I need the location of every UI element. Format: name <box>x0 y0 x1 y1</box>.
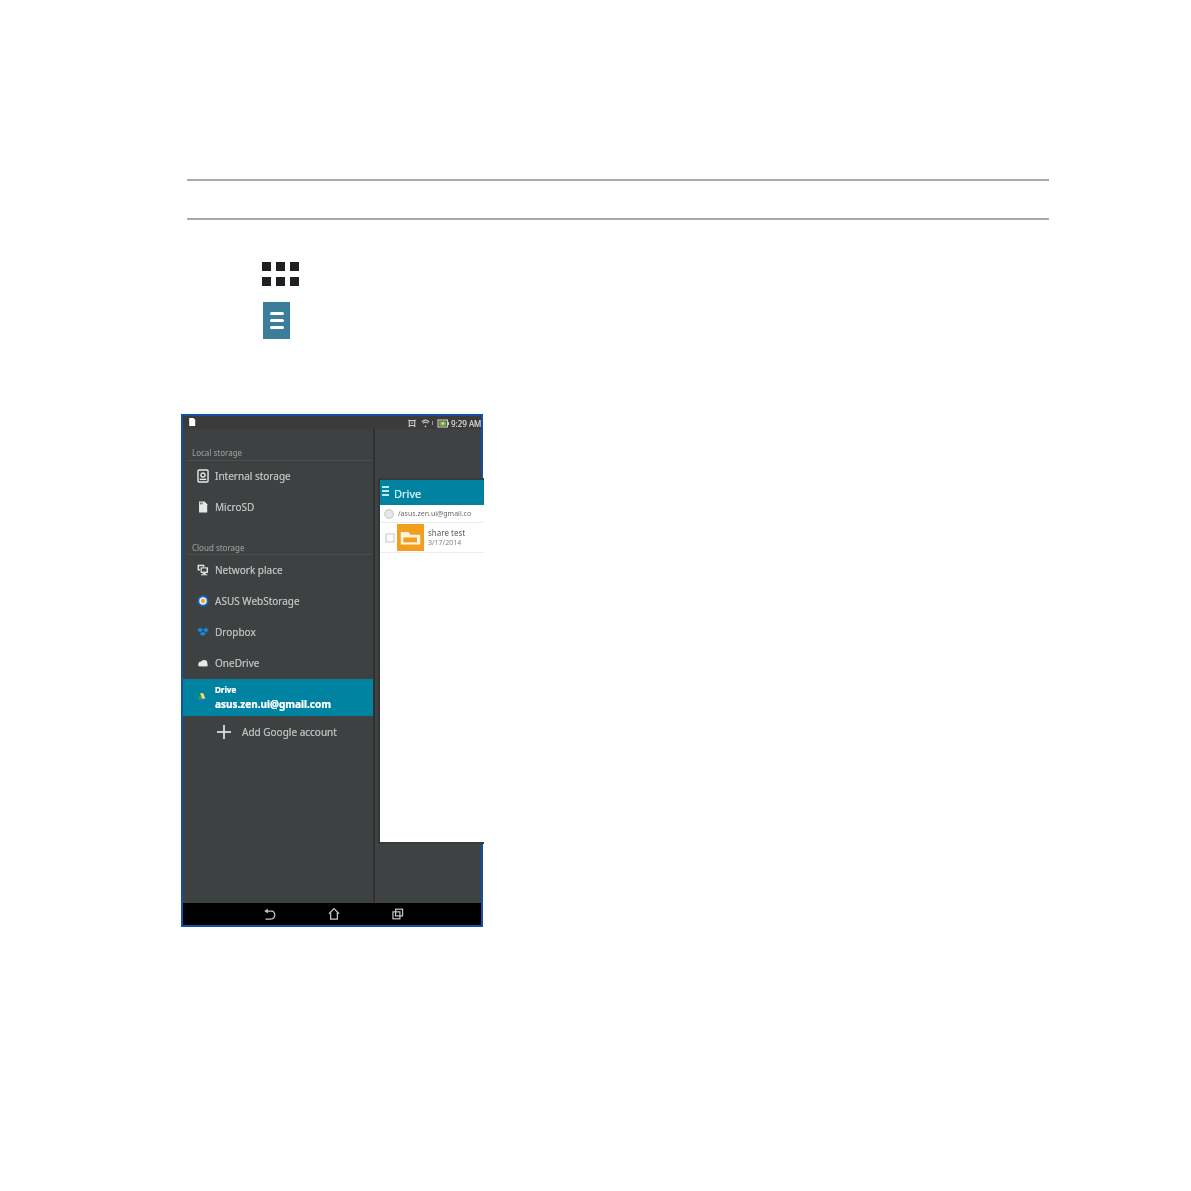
button[interactable]: Drive <box>183 679 374 716</box>
staticText: Network place <box>215 563 283 577</box>
staticText: Cloud storage <box>192 542 245 553</box>
button[interactable]: /asus.zen.ui@gmail.co <box>380 505 484 522</box>
staticText: 3/17/2014 <box>428 538 462 548</box>
button[interactable]: Open navigation drawer <box>382 486 389 496</box>
staticText: MicroSD <box>215 500 255 514</box>
button[interactable]: Menu <box>263 302 290 339</box>
staticText: Internal storage <box>215 469 291 483</box>
staticText: OneDrive <box>215 656 260 670</box>
button[interactable]: ASUS WebStorage <box>183 588 374 614</box>
button[interactable]: share test <box>380 523 484 552</box>
staticText: asus.zen.ui@gmail.com <box>215 697 332 711</box>
staticText: /asus.zen.ui@gmail.co <box>398 509 472 519</box>
button[interactable]: Back <box>248 903 292 925</box>
button[interactable]: Dropbox <box>183 619 374 645</box>
button[interactable]: Home <box>312 903 356 925</box>
staticText: Drive <box>215 684 237 695</box>
staticText: share test <box>428 527 466 538</box>
staticText: Add Google account <box>242 725 337 739</box>
button[interactable]: All apps <box>262 262 299 286</box>
staticText: 9:29 AM <box>451 418 482 429</box>
button[interactable]: MicroSD <box>183 494 374 520</box>
button[interactable]: Network place <box>183 557 374 583</box>
staticText: ASUS WebStorage <box>215 594 300 608</box>
staticText: Drive <box>394 486 422 501</box>
staticText: Dropbox <box>215 625 256 639</box>
button[interactable]: Internal storage <box>183 463 374 489</box>
button[interactable]: OneDrive <box>183 650 374 676</box>
button[interactable]: Recents <box>376 903 420 925</box>
staticText: Local storage <box>192 447 243 458</box>
button[interactable]: Add Google account <box>183 718 374 745</box>
